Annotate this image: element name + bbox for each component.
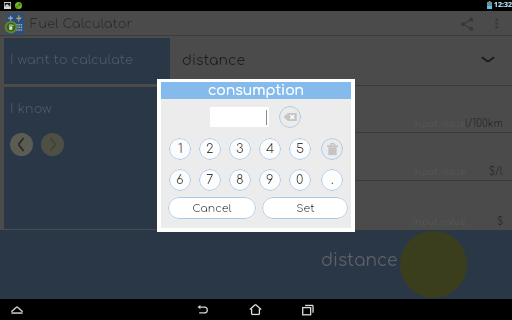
staticText: consumption (208, 83, 305, 99)
button[interactable]: Back (182, 299, 224, 320)
button[interactable]: 5 (289, 138, 311, 160)
staticText: 5 (296, 142, 305, 156)
staticText: 2 (206, 142, 214, 156)
button[interactable]: input value (170, 133, 512, 180)
button[interactable]: Home (234, 299, 276, 320)
button[interactable]: Previous (10, 133, 33, 156)
button[interactable]: 7 (199, 169, 221, 191)
button[interactable]: Expand status bar (4, 299, 29, 320)
staticText: 7 (206, 173, 214, 187)
staticText: distance (321, 251, 398, 270)
staticText: Fuel Calculator (30, 17, 133, 31)
staticText: Set (296, 202, 315, 214)
button[interactable]: Backspace (279, 106, 301, 128)
button[interactable]: 6 (169, 169, 191, 191)
staticText: 3 (236, 142, 244, 156)
button[interactable]: Clear (321, 138, 343, 160)
staticText: 6 (176, 173, 184, 187)
button[interactable]: 4 (259, 138, 281, 160)
button[interactable]: More options (484, 11, 508, 36)
staticText: distance (182, 53, 245, 69)
button[interactable]: . (321, 169, 343, 191)
button[interactable]: distance (170, 36, 512, 85)
staticText: 8 (236, 173, 244, 187)
button[interactable]: Next (41, 133, 64, 156)
button[interactable]: 3 (229, 138, 251, 160)
staticText: 1 (178, 142, 183, 156)
staticText: l/100km (465, 118, 503, 129)
staticText: $/l (489, 166, 503, 177)
staticText: $ (497, 216, 503, 227)
button[interactable]: 1 (169, 138, 191, 160)
button[interactable]: input value (170, 181, 512, 230)
button[interactable]: Set (262, 197, 348, 219)
button[interactable]: input value (170, 86, 512, 132)
button[interactable]: 9 (259, 169, 281, 191)
staticText: 9 (266, 173, 274, 187)
button[interactable]: distance (0, 230, 512, 299)
staticText: 4 (266, 142, 275, 156)
button[interactable]: Recents (287, 299, 329, 320)
button[interactable]: Share (450, 11, 484, 36)
staticText: I want to calculate (10, 53, 133, 67)
button[interactable] (210, 107, 269, 127)
button[interactable]: I know (4, 87, 170, 229)
button[interactable]: Cancel (168, 197, 256, 219)
button[interactable]: 0 (289, 169, 311, 191)
staticText: 0 (296, 173, 304, 187)
button[interactable]: 8 (229, 169, 251, 191)
button[interactable]: 2 (199, 138, 221, 160)
staticText: Cancel (192, 202, 232, 214)
button[interactable]: I want to calculate (4, 38, 170, 84)
staticText: 12:32 (494, 0, 512, 10)
staticText: I know (10, 102, 52, 116)
staticText: . (331, 173, 334, 187)
